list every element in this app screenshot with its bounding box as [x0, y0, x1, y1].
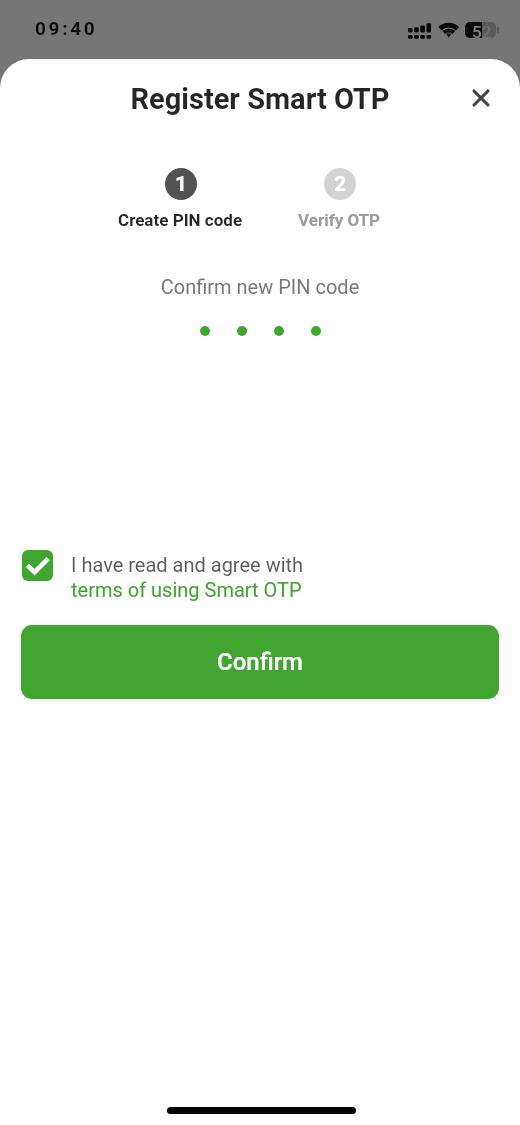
- other: Wi-Fi: [438, 22, 460, 39]
- staticText: 1: [175, 172, 188, 197]
- button[interactable]: 2: [264, 168, 414, 230]
- staticText: Verify OTP: [298, 210, 381, 230]
- other: Cellular signal: [408, 22, 431, 39]
- button[interactable]: 1: [105, 168, 255, 230]
- other: Battery 52 percent: [465, 22, 496, 42]
- staticText: I have read and agree with: [71, 553, 304, 576]
- button[interactable]: Confirm: [21, 625, 499, 699]
- staticText: 09:40: [35, 17, 98, 39]
- staticText: Register Smart OTP: [0, 82, 520, 116]
- staticText: 52: [472, 22, 492, 42]
- staticText: Confirm: [217, 648, 303, 676]
- button[interactable]: I agree to the terms, checked: [22, 550, 53, 581]
- staticText: 52: [472, 22, 482, 38]
- button[interactable]: terms of using Smart OTP: [71, 578, 302, 601]
- button[interactable]: Close: [461, 78, 501, 118]
- staticText: Confirm new PIN code: [0, 275, 520, 298]
- staticText: Create PIN code: [118, 210, 243, 230]
- staticText: 2: [334, 172, 347, 197]
